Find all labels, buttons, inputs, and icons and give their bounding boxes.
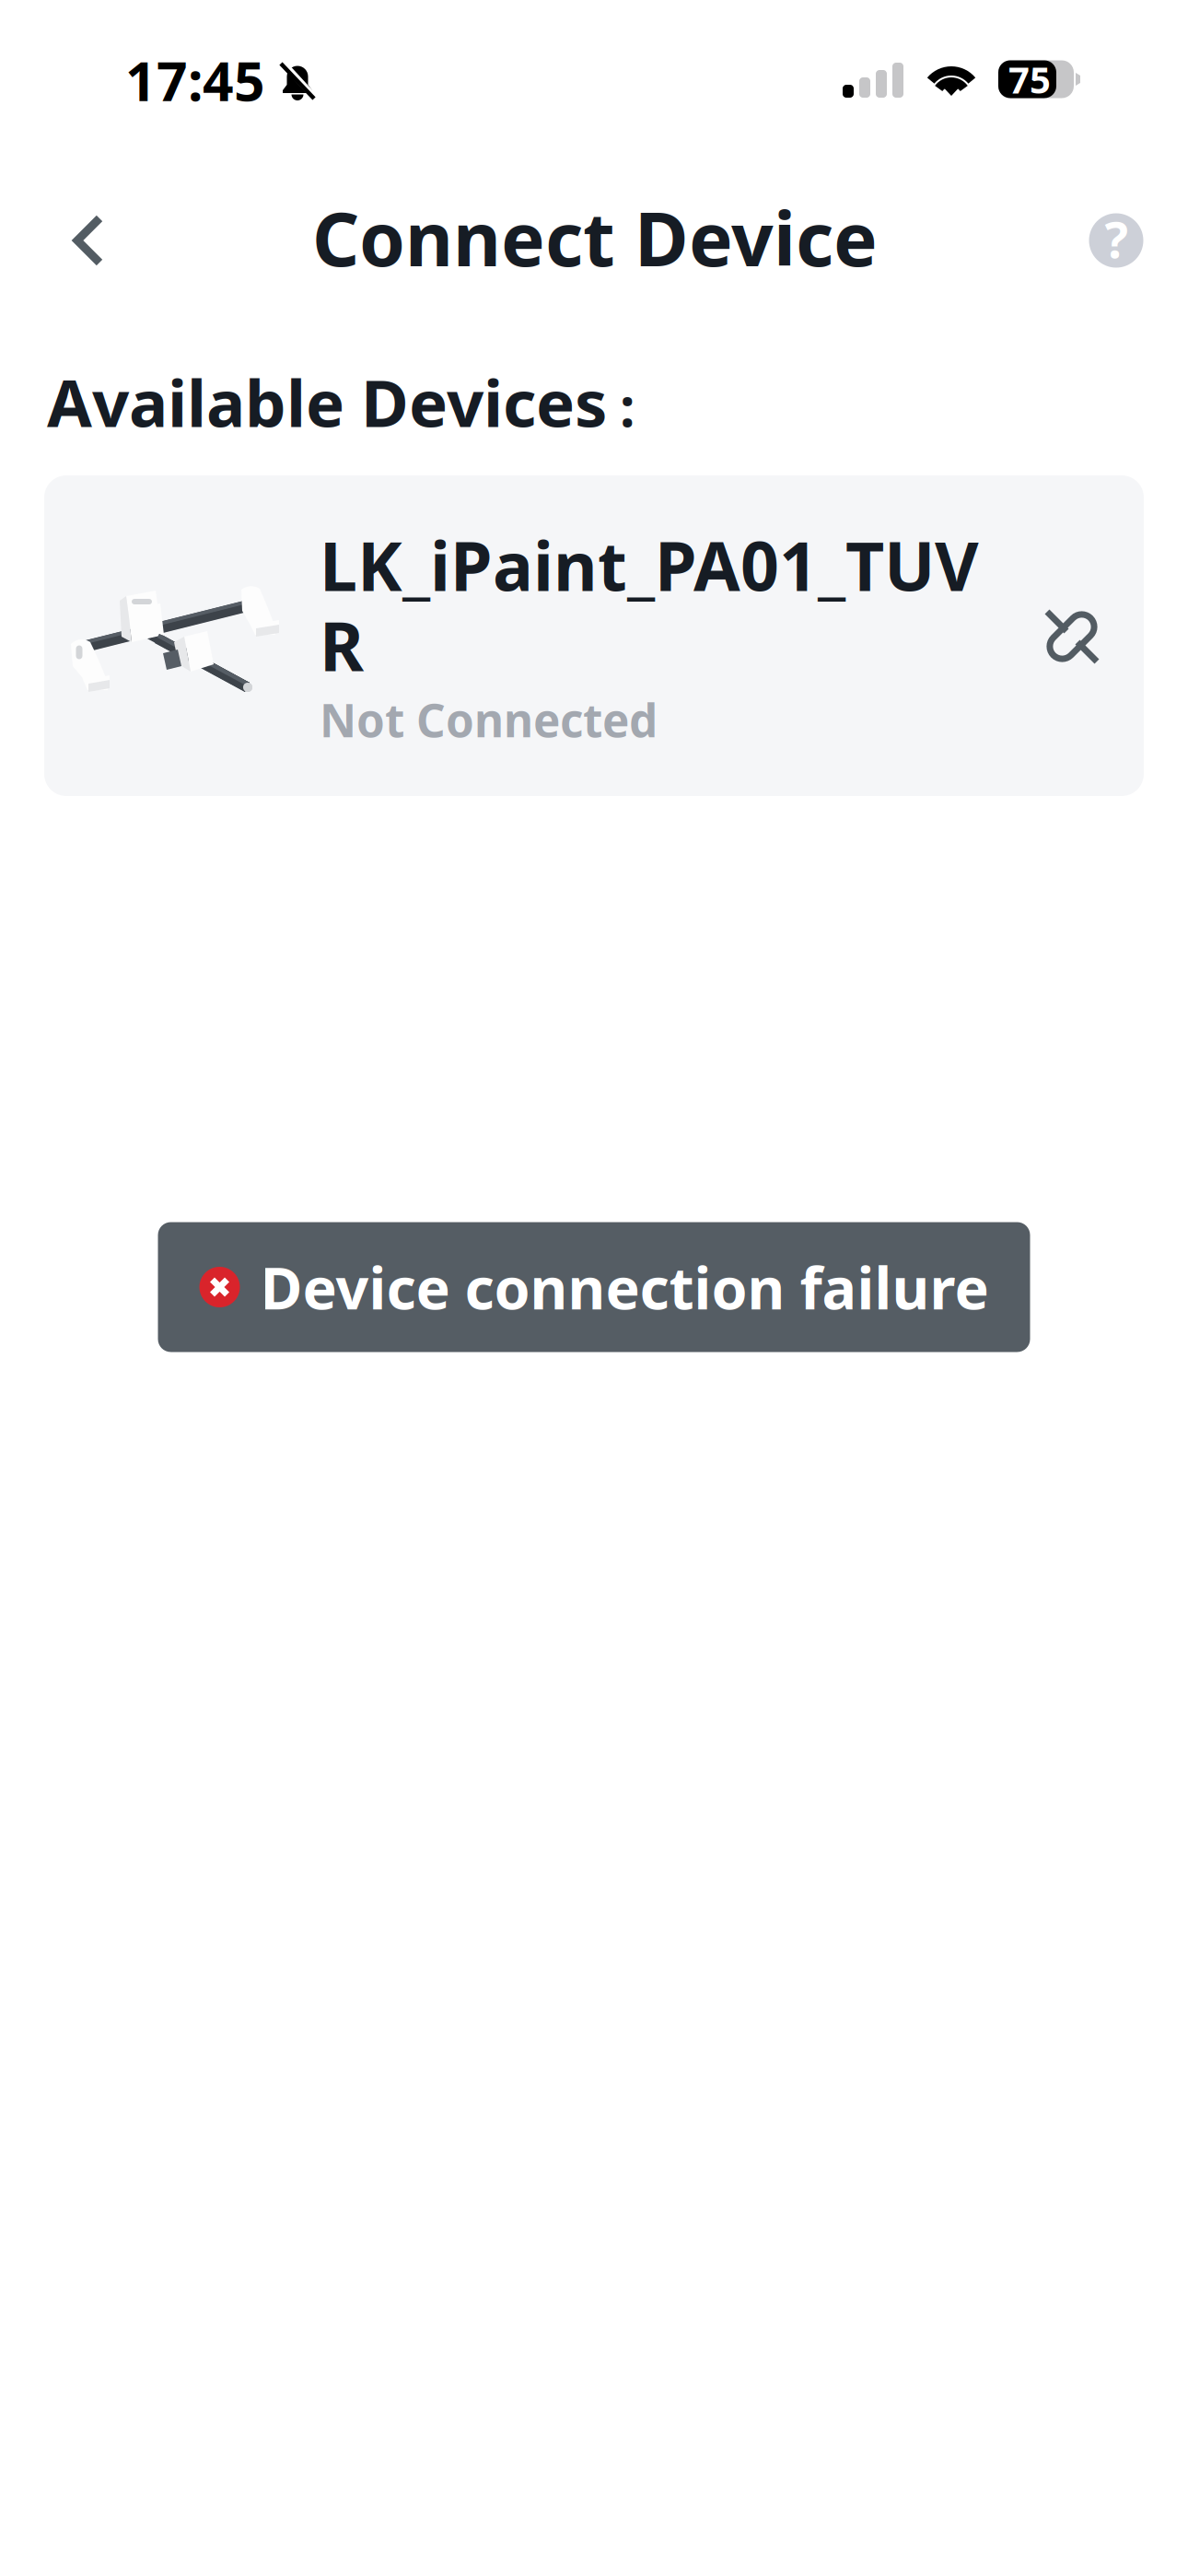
staticText: : [620,370,635,442]
staticText: Not Connected [320,689,658,750]
staticText: Available Devices [47,358,607,445]
button[interactable]: LK_iPaint_PA01_TUV [44,475,1144,796]
staticText: 75 [1008,55,1051,104]
staticText: ? [1105,206,1128,272]
staticText: R [320,600,364,690]
button[interactable]: Help [1069,193,1164,288]
staticText: LK_iPaint_PA01_TUV [320,520,979,610]
staticText: Device connection failure [260,1249,989,1325]
staticText: Connect Device [312,189,878,287]
button[interactable]: Back [37,181,140,299]
staticText: 17:45 [125,44,265,116]
